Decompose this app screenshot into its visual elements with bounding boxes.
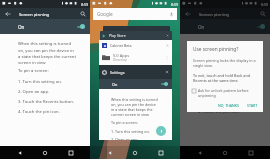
button[interactable]: Play Store (100, 31, 172, 40)
button[interactable]: Back (194, 147, 206, 159)
button[interactable]: START (245, 102, 260, 109)
staticText: When this setting is turned on, you can … (111, 97, 159, 117)
button[interactable]: Ask for unlock pattern before unpinning (192, 88, 260, 98)
staticText: 4. Touch the pin icon. (198, 109, 240, 115)
staticText: Ask for unlock pattern before unpinning (198, 88, 260, 98)
button[interactable]: Settings (99, 65, 172, 140)
staticText: NO, THANKS (218, 103, 239, 108)
staticText: 2. Open an app. (18, 89, 50, 95)
button[interactable]: Back (104, 147, 116, 159)
button[interactable]: Voice search (169, 12, 174, 17)
button[interactable]: Cabinet Beta (99, 40, 172, 65)
staticText: 4. Touch the pin icon. (18, 109, 60, 115)
staticText: Cabinet Beta (110, 43, 132, 48)
button[interactable]: Home (219, 147, 231, 159)
button[interactable]: Back (14, 147, 26, 159)
staticText: Directory (113, 58, 127, 62)
staticText: To exit, touch and hold Back and Recents… (193, 73, 260, 83)
staticText: Screen pinning locks the display in a si… (193, 58, 260, 68)
staticText: Google (97, 11, 113, 17)
button[interactable]: Toggle screen pinning (256, 24, 265, 29)
button[interactable]: Recents (65, 147, 77, 159)
button[interactable]: Recents (155, 147, 167, 159)
staticText: 2. Open an app. (198, 89, 230, 95)
button[interactable]: Toggle screen pinning (161, 82, 168, 86)
button[interactable]: Search (79, 10, 87, 18)
staticText: 1. Turn this setting on. (198, 79, 242, 85)
staticText: On (18, 24, 25, 30)
button[interactable]: Back (184, 10, 192, 18)
staticText: 8:59 (171, 2, 179, 7)
button[interactable]: Pin screen (156, 126, 166, 136)
button[interactable]: NO, THANKS (216, 102, 241, 109)
staticText: When this setting is turned on, you can … (18, 41, 77, 65)
staticText: Screen pinning (19, 11, 50, 17)
staticText: On (198, 24, 205, 30)
staticText: To pin a screen: (111, 120, 138, 125)
staticText: When this setting is turned on, you can … (198, 41, 257, 65)
staticText: Play Store (109, 33, 126, 38)
staticText: 1. Turn this setting on. (18, 79, 62, 85)
button[interactable]: Search (259, 10, 267, 18)
button[interactable]: Home (39, 147, 51, 159)
button[interactable]: Home (129, 147, 141, 159)
button[interactable]: Back (4, 10, 12, 18)
staticText: START (247, 103, 258, 108)
staticText: 3. Touch the Recents button. (198, 99, 254, 105)
button[interactable]: Recents (245, 147, 257, 159)
staticText: Screen pinning (199, 11, 230, 17)
staticText: Use screen pinning? (193, 46, 239, 53)
staticText: 3. Touch the Recents button. (18, 99, 74, 105)
staticText: To pin a screen: (18, 68, 49, 74)
staticText: 8:59 (81, 2, 89, 7)
staticText: 2. Open an app. (111, 137, 139, 140)
button[interactable]: Toggle screen pinning (76, 24, 85, 29)
staticText: 8:59 (261, 2, 269, 7)
staticText: Settings (110, 70, 125, 75)
button[interactable]: Google (93, 8, 177, 20)
staticText: On (112, 82, 118, 87)
staticText: 1. Turn this setting on. (111, 129, 150, 134)
staticText: 5.0 Apps (113, 53, 130, 58)
